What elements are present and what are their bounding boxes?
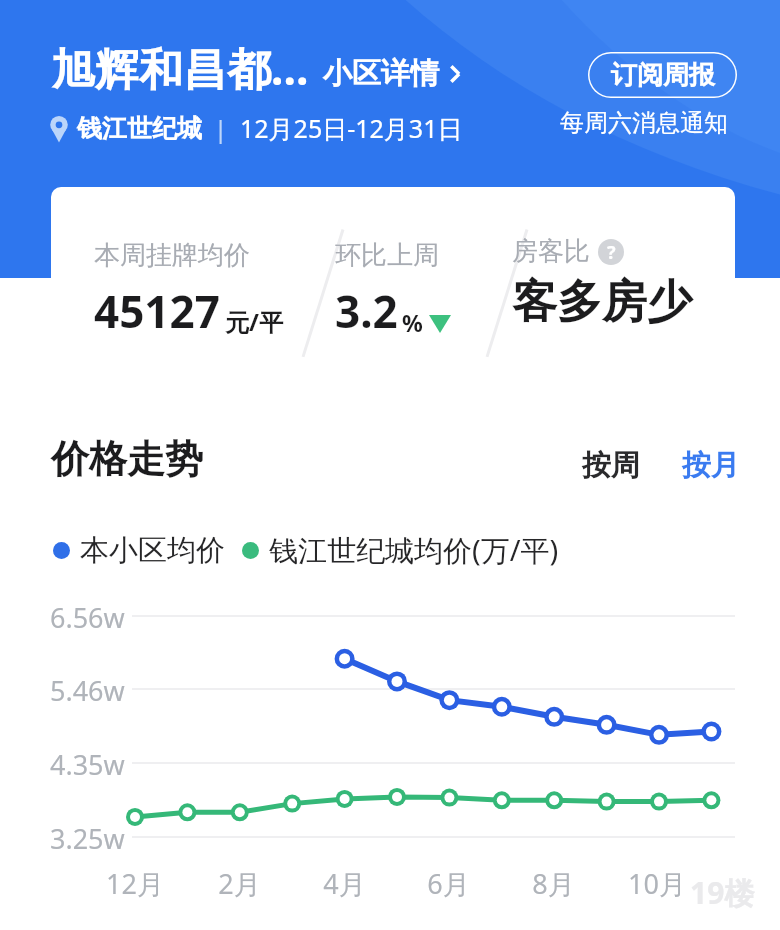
staticText: 房客比 [512,235,590,268]
staticText: 12月 [106,865,164,902]
staticText: 钱江世纪城 [77,113,202,144]
staticText: 12月25日-12月31日 [240,111,463,145]
staticText: 元/平 [225,305,283,338]
staticText: 钱江世纪城均价(万/平) [269,530,559,570]
staticText: 2月 [218,865,261,902]
staticText: 按周 [582,447,640,484]
staticText: 10月 [628,865,686,902]
staticText: 45127 [94,281,220,341]
button[interactable]: 本周挂牌均价 [51,187,735,380]
staticText: 5.46w [50,672,125,709]
staticText: 8月 [532,865,575,902]
staticText: 4.35w [50,746,125,783]
staticText: % [402,307,423,338]
staticText: 3.25w [50,820,125,857]
staticText: 4月 [323,865,366,902]
staticText: 价格走势 [51,435,203,483]
button[interactable]: 按月 [678,443,744,488]
staticText: 19楼 [690,872,755,913]
staticText: 旭辉和昌都… [51,38,309,98]
staticText: 3.2 [335,281,398,341]
staticText: 按月 [682,447,740,484]
staticText: 本小区均价 [80,532,225,569]
staticText: 6月 [427,865,470,902]
staticText: 6.56w [50,599,125,636]
button[interactable]: 小区详情 [323,55,463,98]
button[interactable]: 订阅周报 [588,52,737,98]
staticText: 小区详情 [323,55,439,92]
staticText: | [214,112,228,145]
button[interactable]: 按周 [578,443,644,488]
staticText: 环比上周 [335,239,439,272]
staticText: 客多房少 [512,274,692,331]
button[interactable]: 说明 [598,239,624,265]
staticText: 订阅周报 [611,59,715,92]
staticText: 每周六消息通知 [560,108,728,138]
staticText: 本周挂牌均价 [94,239,250,272]
staticText: ? [607,240,616,265]
